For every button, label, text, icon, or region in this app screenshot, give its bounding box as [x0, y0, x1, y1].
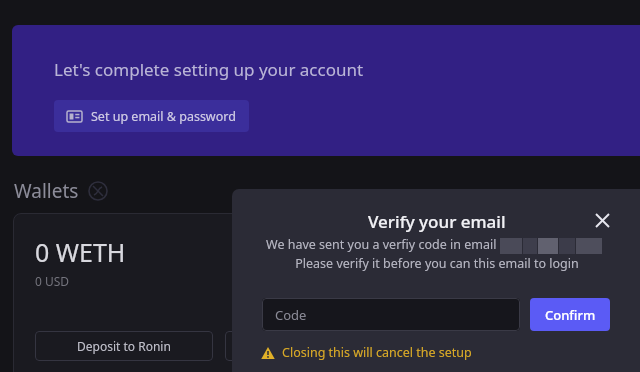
- staticText: Wallets: [14, 178, 79, 204]
- staticText: Deposit to Ronin: [77, 338, 171, 354]
- button[interactable]: Set up email & password: [54, 100, 249, 132]
- button[interactable]: Close: [587, 205, 617, 235]
- button[interactable]: Withdraw: [225, 331, 333, 361]
- staticText: We have sent you a verfiy code in email: [266, 236, 497, 253]
- staticText: 0 USD: [35, 273, 70, 289]
- button[interactable]: Code: [262, 298, 520, 331]
- staticText: Confirm: [545, 306, 596, 324]
- staticText: Code: [275, 306, 307, 324]
- staticText: Set up email & password: [91, 108, 236, 125]
- staticText: Verify your email: [368, 210, 506, 233]
- button[interactable]: Confirm: [530, 298, 610, 331]
- staticText: Please verify it before you can this ema…: [232, 255, 640, 272]
- staticText: Closing this will cancel the setup: [282, 344, 472, 361]
- button[interactable]: Hide balance: [87, 180, 109, 202]
- staticText: Withdraw: [253, 338, 308, 354]
- staticText: 0 WETH: [35, 235, 126, 269]
- staticText: Let's complete setting up your account: [54, 58, 364, 81]
- button[interactable]: Deposit to Ronin: [35, 331, 213, 361]
